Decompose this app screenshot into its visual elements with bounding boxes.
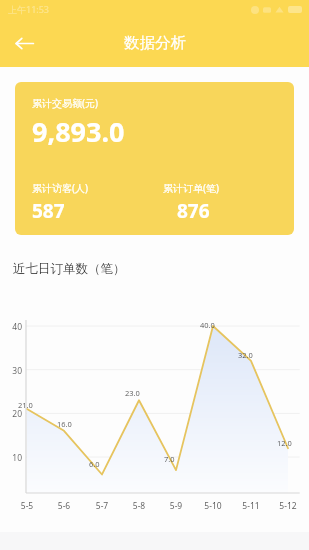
staticText: 5-10 bbox=[200, 500, 226, 512]
staticText: 5-5 bbox=[14, 500, 40, 512]
staticText: 累计访客(人) bbox=[32, 181, 88, 195]
staticText: 12.0 bbox=[277, 438, 292, 448]
staticText: 40.0 bbox=[200, 320, 215, 330]
staticText: 5-6 bbox=[51, 500, 77, 512]
staticText: 32.0 bbox=[238, 350, 253, 360]
staticText: 40 bbox=[6, 321, 22, 333]
staticText: 上午11:53 bbox=[8, 3, 50, 15]
staticText: 数据分析 bbox=[124, 33, 186, 53]
staticText: 30 bbox=[6, 365, 22, 377]
staticText: 5-11 bbox=[238, 500, 264, 512]
staticText: 5-7 bbox=[89, 500, 115, 512]
button[interactable]: Back bbox=[6, 25, 42, 61]
button[interactable]: 累计交易额(元) bbox=[15, 82, 294, 235]
staticText: 21.0 bbox=[18, 400, 33, 410]
staticText: 23.0 bbox=[125, 388, 140, 398]
staticText: 16.0 bbox=[57, 419, 72, 429]
staticText: 累计交易额(元) bbox=[32, 96, 98, 110]
staticText: 876 bbox=[177, 198, 210, 224]
staticText: 10 bbox=[6, 452, 22, 464]
staticText: 7.0 bbox=[164, 454, 175, 464]
staticText: 6.0 bbox=[89, 459, 100, 469]
staticText: 20 bbox=[6, 408, 22, 420]
staticText: 5-12 bbox=[275, 500, 301, 512]
staticText: 5-8 bbox=[126, 500, 152, 512]
staticText: 9,893.0 bbox=[32, 113, 125, 150]
staticText: 5-9 bbox=[163, 500, 189, 512]
staticText: 累计订单(笔) bbox=[163, 181, 219, 195]
staticText: 近七日订单数（笔） bbox=[13, 261, 126, 277]
staticText: 587 bbox=[32, 198, 65, 224]
